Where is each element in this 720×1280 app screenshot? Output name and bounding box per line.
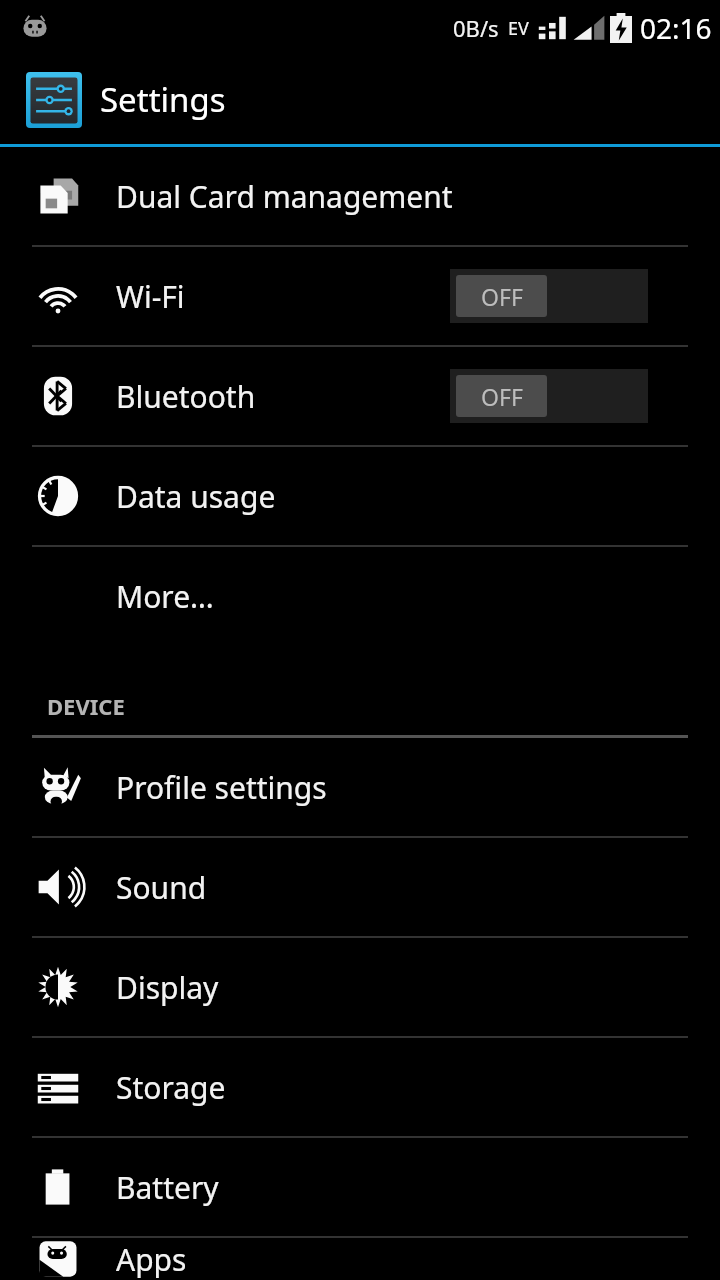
- staticText: Settings: [100, 77, 226, 122]
- button[interactable]: Sound: [0, 838, 720, 936]
- button[interactable]: Dual Card management: [0, 147, 720, 245]
- staticText: Apps: [116, 1239, 187, 1280]
- button[interactable]: Bluetooth: [0, 347, 720, 445]
- staticText: Wi-Fi: [116, 276, 185, 317]
- staticText: Sound: [116, 867, 207, 908]
- staticText: Profile settings: [116, 767, 327, 808]
- button[interactable]: Storage: [0, 1038, 720, 1136]
- other: Settings app icon: [26, 72, 82, 128]
- button[interactable]: Toggle off: [450, 269, 648, 323]
- staticText: Bluetooth: [116, 376, 256, 417]
- staticText: DEVICE: [47, 691, 125, 721]
- staticText: Battery: [116, 1167, 219, 1208]
- staticText: Storage: [116, 1067, 226, 1108]
- button[interactable]: Wi-Fi: [0, 247, 720, 345]
- staticText: More…: [116, 576, 214, 617]
- staticText: OFF: [481, 381, 523, 412]
- staticText: Display: [116, 967, 219, 1008]
- staticText: 02:16: [640, 9, 712, 47]
- staticText: EV: [508, 16, 529, 41]
- staticText: OFF: [481, 281, 523, 312]
- staticText: 0B/s: [453, 13, 499, 43]
- button[interactable]: More…: [0, 547, 720, 645]
- button[interactable]: Apps: [0, 1238, 720, 1280]
- staticText: Data usage: [116, 476, 276, 517]
- button[interactable]: Battery: [0, 1138, 720, 1236]
- staticText: Dual Card management: [116, 176, 453, 217]
- button[interactable]: Toggle off: [450, 369, 648, 423]
- button[interactable]: Profile settings: [0, 738, 720, 836]
- button[interactable]: Display: [0, 938, 720, 1036]
- button[interactable]: Data usage: [0, 447, 720, 545]
